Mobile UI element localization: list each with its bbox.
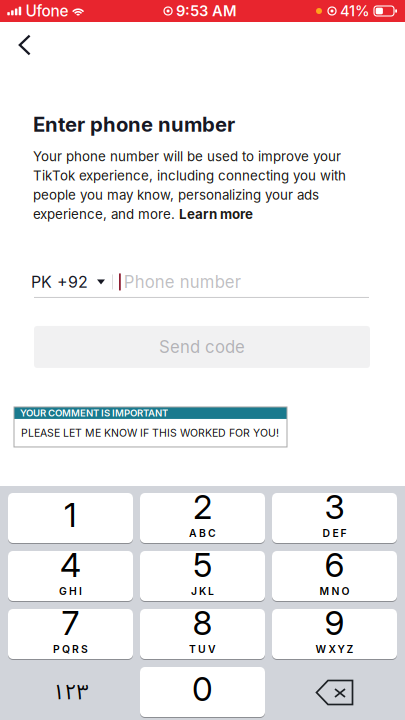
button[interactable]: Switch to Arabic numerals — [8, 667, 133, 718]
staticText: 9:53 AM — [176, 2, 237, 20]
staticText: 3 — [324, 487, 344, 527]
button[interactable]: Send code — [34, 326, 370, 368]
button[interactable]: 6 — [272, 551, 397, 602]
staticText: 8 — [192, 603, 212, 643]
button[interactable]: 8 — [140, 609, 265, 660]
staticText: 1 — [64, 495, 77, 535]
staticText: M N O — [319, 585, 349, 598]
staticText: 9 — [324, 603, 344, 643]
staticText: 2 — [193, 487, 212, 527]
staticText: Phone number — [124, 272, 241, 292]
staticText: G H I — [59, 585, 82, 598]
button[interactable]: 2 — [140, 493, 265, 544]
button[interactable]: 0 — [140, 667, 265, 718]
staticText: Send code — [159, 337, 245, 357]
staticText: J K L — [191, 585, 214, 598]
button[interactable]: Delete — [272, 667, 397, 718]
button[interactable]: 4 — [8, 551, 133, 602]
staticText: 7 — [61, 603, 79, 643]
staticText: A B C — [189, 527, 216, 540]
staticText: 5 — [193, 545, 212, 585]
staticText: 0 — [192, 669, 213, 709]
staticText: Your phone number will be used to improv… — [33, 148, 346, 222]
staticText: Enter phone number — [33, 112, 235, 136]
button[interactable]: 7 — [8, 609, 133, 660]
button[interactable]: 1 — [8, 493, 133, 544]
button[interactable]: 5 — [140, 551, 265, 602]
button[interactable]: 3 — [272, 493, 397, 544]
staticText: T U V — [189, 643, 216, 656]
staticText: ١٢٣ — [52, 670, 88, 715]
staticText: PLEASE LET ME KNOW IF THIS WORKED FOR YO… — [21, 427, 279, 439]
staticText: PK +92 — [31, 272, 88, 292]
staticText: P Q R S — [53, 643, 88, 656]
staticText: D E F — [322, 527, 346, 540]
staticText: YOUR COMMENT IS IMPORTANT — [20, 407, 168, 419]
staticText: W X Y Z — [315, 643, 353, 656]
staticText: 4 — [60, 545, 81, 585]
staticText: 6 — [324, 545, 344, 585]
button[interactable]: Back — [0, 22, 47, 68]
staticText: 41% — [340, 2, 370, 20]
button[interactable]: PK +92 — [34, 267, 105, 297]
button[interactable]: 9 — [272, 609, 397, 660]
staticText: Ufone — [25, 2, 68, 20]
